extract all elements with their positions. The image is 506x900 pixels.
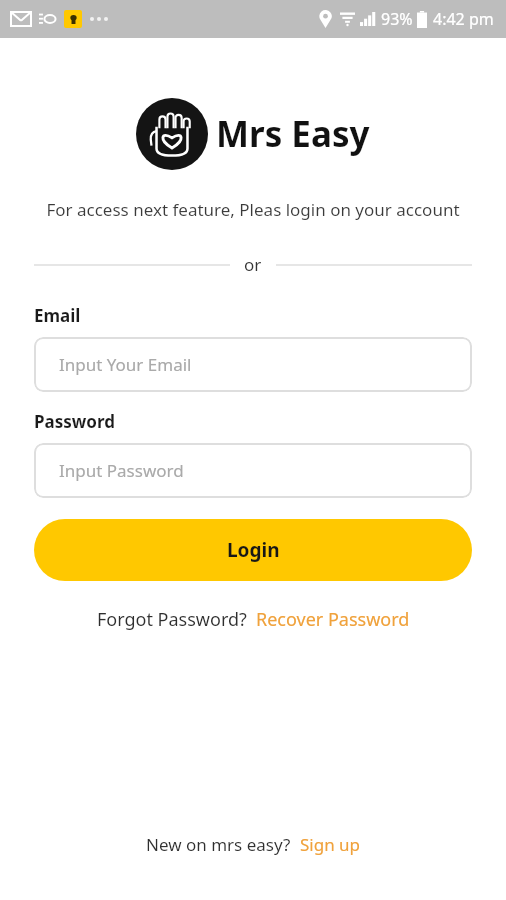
staticText: 93% xyxy=(381,8,413,30)
staticText: or xyxy=(244,253,262,276)
staticText: Login xyxy=(227,537,280,563)
staticText: Mrs Easy xyxy=(216,110,370,158)
staticText: New on mrs easy? xyxy=(146,833,291,856)
staticText: Forgot Password? xyxy=(97,607,247,632)
staticText: 4:42 pm xyxy=(433,8,494,30)
button[interactable]: Password input xyxy=(34,443,472,498)
staticText: Input Your Email xyxy=(59,353,192,376)
staticText: Recover Password xyxy=(256,607,410,632)
button[interactable]: Sign up xyxy=(300,833,361,856)
staticText: Input Password xyxy=(59,459,184,482)
staticText: For access next feature, Pleas login on … xyxy=(40,198,466,221)
staticText: Email xyxy=(34,304,81,327)
button[interactable]: Login xyxy=(34,519,472,581)
staticText: Password xyxy=(34,410,115,433)
button[interactable]: Email input xyxy=(34,337,472,392)
button[interactable]: Recover Password xyxy=(256,607,410,632)
staticText: Sign up xyxy=(300,833,361,856)
